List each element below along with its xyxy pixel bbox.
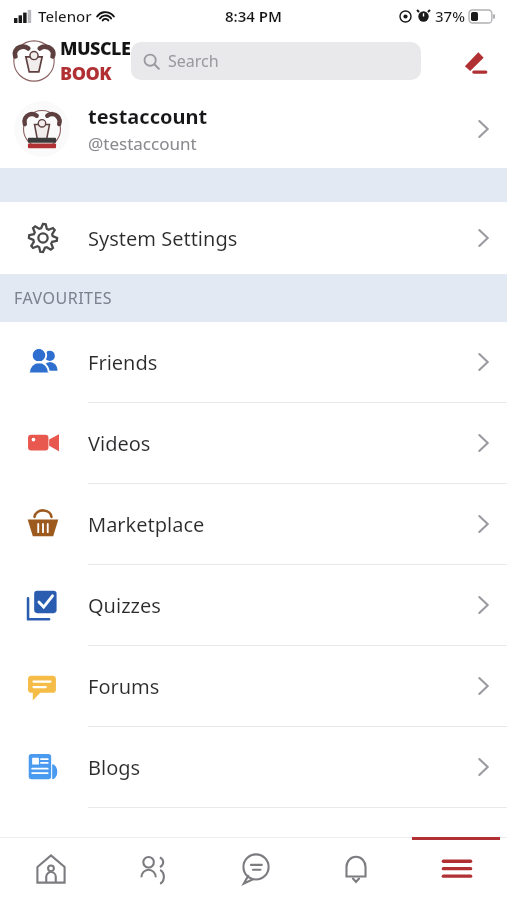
button[interactable]: System Settings <box>0 202 507 274</box>
button[interactable]: Menu <box>406 837 507 900</box>
button[interactable]: testaccount <box>0 90 507 168</box>
staticText: 37% <box>435 6 465 26</box>
staticText: Quizzes <box>88 592 161 619</box>
staticText: Telenor <box>38 6 92 26</box>
button[interactable]: Compose post <box>455 41 495 81</box>
staticText: testaccount <box>88 103 208 130</box>
staticText: Videos <box>88 430 151 457</box>
staticText: 8:34 PM <box>225 6 282 26</box>
button[interactable]: Forums <box>0 646 507 726</box>
button[interactable]: Home <box>0 837 102 900</box>
button[interactable]: Videos <box>0 403 507 483</box>
staticText: Blogs <box>88 754 141 781</box>
button[interactable]: Search <box>131 42 421 80</box>
button[interactable]: Marketplace <box>0 484 507 564</box>
staticText: MUSCLE <box>60 36 131 61</box>
staticText: @testaccount <box>88 132 197 155</box>
staticText: System Settings <box>88 225 238 252</box>
staticText: BOOK <box>60 61 112 86</box>
staticText: Friends <box>88 349 158 376</box>
staticText: Search <box>168 50 219 72</box>
button[interactable]: Notifications <box>305 837 406 900</box>
button[interactable]: Blogs <box>0 727 507 807</box>
staticText: Forums <box>88 673 160 700</box>
staticText: FAVOURITES <box>14 287 113 309</box>
staticText: Marketplace <box>88 511 205 538</box>
button[interactable]: Friends <box>0 322 507 402</box>
button[interactable]: Friends <box>102 837 204 900</box>
button[interactable]: Messages <box>204 837 305 900</box>
button[interactable]: Quizzes <box>0 565 507 645</box>
